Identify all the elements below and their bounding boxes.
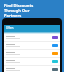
- button[interactable]: [4, 42, 60, 49]
- button[interactable]: [4, 66, 60, 72]
- staticText: Find Discounts: [4, 3, 34, 8]
- button[interactable]: [4, 34, 60, 41]
- staticText: Offers: [6, 26, 14, 30]
- button[interactable]: [4, 58, 60, 65]
- button[interactable]: [4, 50, 60, 57]
- staticText: Partners: [4, 13, 22, 18]
- staticText: Through Our: [4, 8, 30, 13]
